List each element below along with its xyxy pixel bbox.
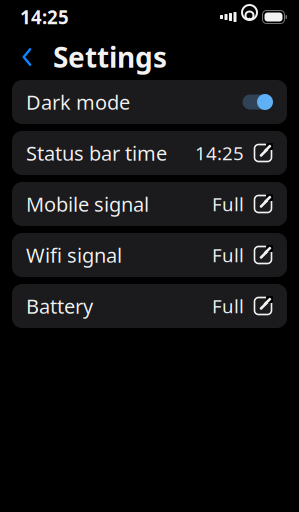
staticText: Full (212, 294, 244, 318)
staticText: Settings (53, 38, 167, 76)
staticText: Mobile signal (26, 191, 149, 217)
button[interactable]: Status bar time (12, 131, 287, 175)
staticText: Full (212, 192, 244, 216)
button[interactable]: Dark mode (12, 80, 287, 124)
staticText: Dark mode (26, 89, 130, 115)
button[interactable]: Wifi signal (12, 233, 287, 277)
button[interactable]: Back (10, 40, 44, 74)
button[interactable]: Battery (12, 284, 287, 328)
staticText: Status bar time (26, 140, 167, 166)
button[interactable]: Mobile signal (12, 182, 287, 226)
staticText: Battery (26, 293, 93, 319)
staticText: Wifi signal (26, 242, 122, 268)
staticText: Full (212, 243, 244, 267)
staticText: 14:25 (20, 5, 69, 29)
staticText: 14:25 (195, 141, 244, 165)
